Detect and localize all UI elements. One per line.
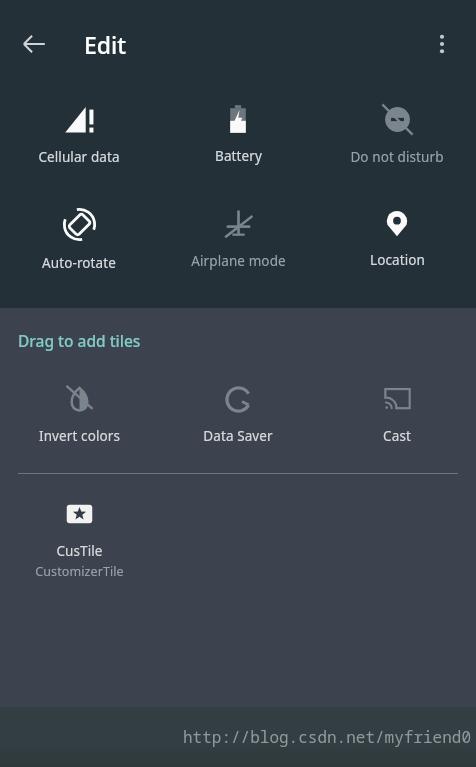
button[interactable]: Data Saver (159, 377, 317, 451)
staticText: Battery (215, 147, 262, 165)
button[interactable]: Do not disturb (318, 96, 476, 172)
button[interactable]: Invert colors (0, 377, 158, 451)
staticText: CustomizerTile (35, 563, 124, 580)
button[interactable]: Cast (318, 377, 476, 451)
button[interactable]: Cellular data (0, 96, 158, 172)
button[interactable]: Airplane mode (159, 200, 317, 276)
button[interactable]: Back (10, 20, 58, 68)
staticText: CusTile (56, 542, 103, 560)
staticText: Do not disturb (350, 148, 444, 166)
staticText: Drag to add tiles (18, 330, 141, 351)
button[interactable]: More options (418, 20, 466, 68)
staticText: Cast (383, 427, 411, 445)
button[interactable]: CusTile (0, 492, 158, 586)
staticText: Invert colors (39, 427, 120, 445)
staticText: Location (370, 251, 425, 269)
staticText: Auto-rotate (42, 254, 116, 272)
staticText: Cellular data (38, 148, 120, 166)
staticText: http://blog.csdn.net/myfriend0 (183, 726, 472, 748)
staticText: Data Saver (203, 427, 273, 445)
button[interactable]: Battery (159, 96, 317, 171)
staticText: Airplane mode (191, 252, 286, 270)
button[interactable]: Location (318, 200, 476, 275)
staticText: Edit (84, 29, 127, 60)
button[interactable]: Auto-rotate (0, 200, 158, 278)
